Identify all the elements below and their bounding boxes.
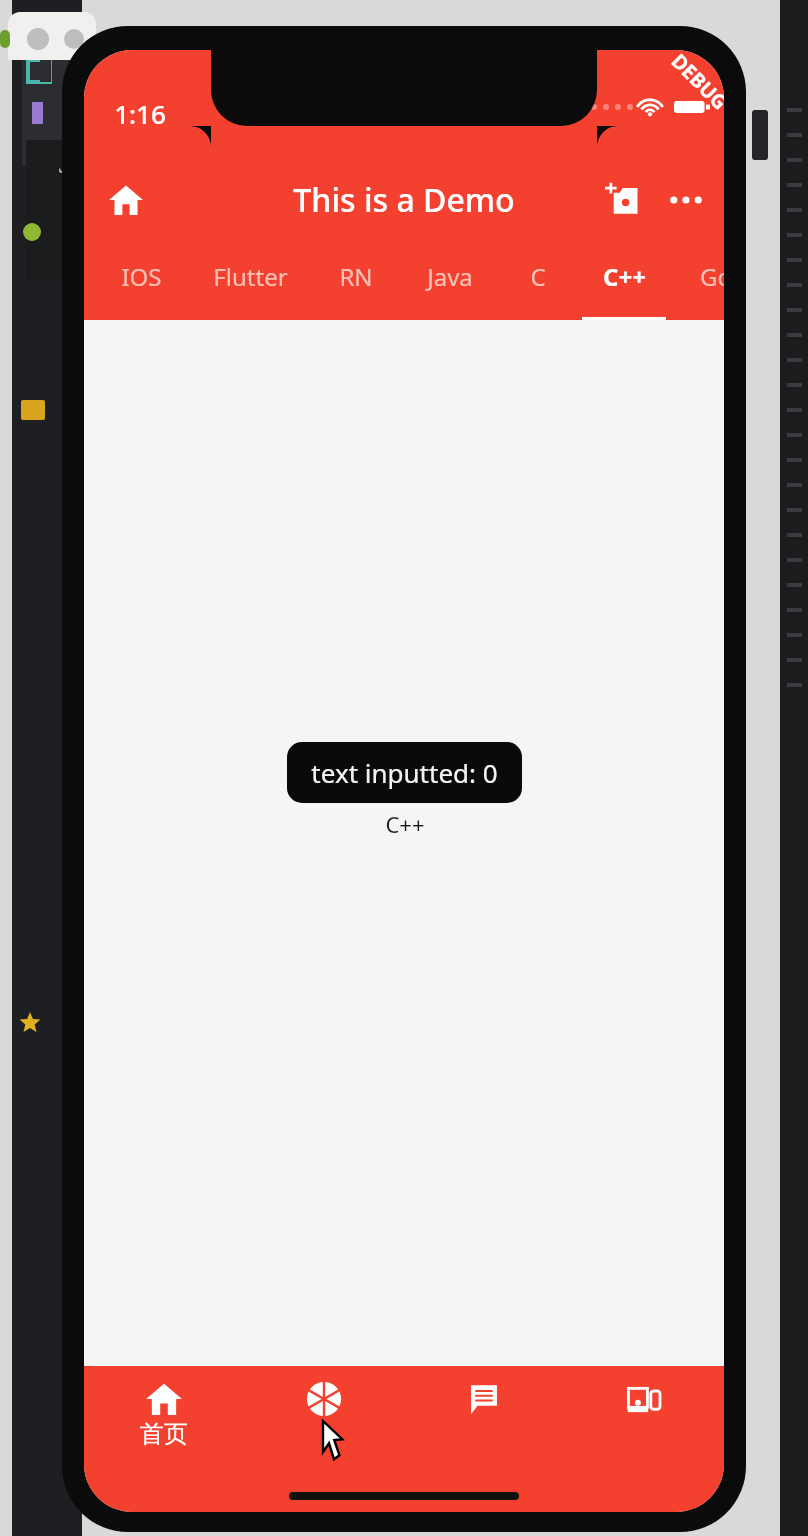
button[interactable]: Go (674, 248, 724, 320)
staticText: DEBUG (666, 50, 724, 115)
staticText: 4: Project (57, 121, 82, 200)
staticText: RN (339, 260, 373, 293)
staticText: IOS (121, 260, 162, 293)
button[interactable]: Add a photo (590, 168, 654, 232)
staticText: 7: Structure (67, 249, 92, 348)
button[interactable]: C++ (577, 248, 671, 320)
staticText: text inputted: 0 (311, 755, 498, 790)
button[interactable]: RN (312, 248, 400, 320)
staticText: C++ (603, 260, 646, 293)
button[interactable]: Messages (404, 1366, 564, 1472)
button[interactable]: Home (84, 1366, 244, 1472)
staticText: 2: Favorites (66, 889, 91, 986)
button[interactable]: IOS (96, 248, 186, 320)
staticText: 1:16 (114, 96, 166, 131)
staticText: This is a Demo (293, 178, 515, 222)
staticText: C++ (385, 809, 425, 839)
button[interactable]: Java (403, 248, 497, 320)
button[interactable]: Devices (564, 1366, 724, 1472)
staticText: Flutter (213, 260, 288, 293)
staticText: C (530, 260, 546, 293)
staticText: Java (427, 260, 473, 293)
staticText: 首页 (140, 1419, 188, 1449)
staticText: Go (700, 260, 724, 293)
button[interactable]: Camera (244, 1366, 404, 1472)
button[interactable]: More options (654, 168, 718, 232)
button[interactable]: C (503, 248, 573, 320)
button[interactable]: Home (94, 168, 158, 232)
button[interactable]: Flutter (194, 248, 306, 320)
